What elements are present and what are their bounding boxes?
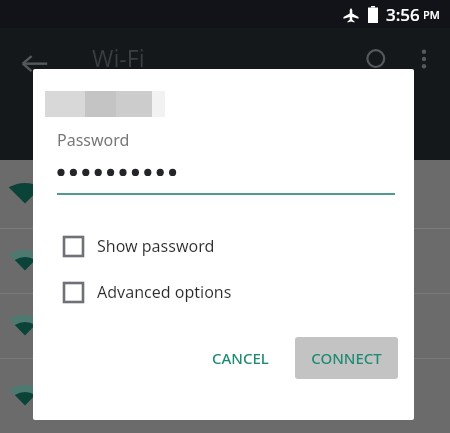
other: Airplane mode <box>343 7 359 23</box>
staticText: Wi-Fi <box>92 42 145 73</box>
button[interactable]: Show password <box>33 233 414 259</box>
button[interactable] <box>0 293 450 358</box>
staticText: 3:56 <box>386 3 420 26</box>
button[interactable]: Back <box>18 46 52 80</box>
staticText: CONNECT <box>311 348 382 368</box>
button[interactable]: Search <box>362 46 392 76</box>
button[interactable]: More options <box>411 46 437 72</box>
staticText: Show password <box>97 235 215 257</box>
other: Battery <box>368 6 378 23</box>
staticText: Advanced options <box>97 281 232 303</box>
button[interactable] <box>0 160 450 228</box>
button[interactable]: CONNECT <box>295 337 398 379</box>
button[interactable]: Advanced options <box>33 279 414 305</box>
staticText: PM <box>423 7 440 22</box>
button[interactable] <box>0 358 450 433</box>
button[interactable]: CANCEL <box>200 338 281 378</box>
staticText: Password <box>57 129 130 151</box>
button[interactable] <box>0 228 450 293</box>
staticText: CANCEL <box>212 348 269 368</box>
